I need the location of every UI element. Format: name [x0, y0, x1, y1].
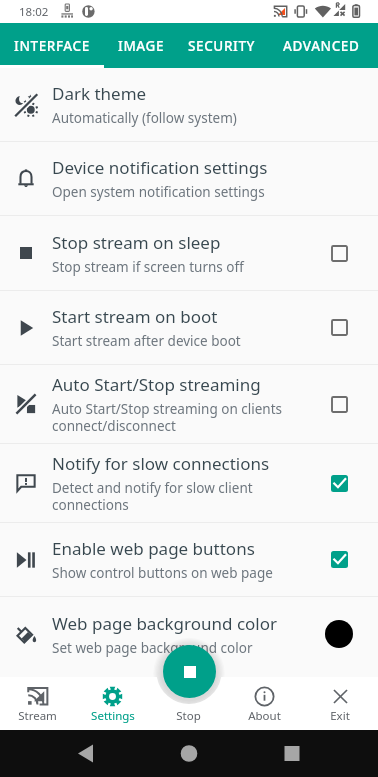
staticText: About: [248, 708, 281, 724]
button[interactable]: Settings: [75, 677, 150, 730]
staticText: Stop: [176, 708, 201, 724]
button[interactable]: IMAGE: [104, 23, 178, 68]
button[interactable]: Start stream on boot: [0, 291, 378, 364]
staticText: IMAGE: [118, 37, 165, 55]
staticText: 18:02: [19, 4, 49, 20]
button[interactable]: Toggle: [331, 245, 348, 262]
staticText: Auto Start/Stop streaming on clients con…: [52, 400, 282, 435]
staticText: Auto Start/Stop streaming: [52, 373, 261, 396]
button[interactable]: Dark theme: [0, 68, 378, 141]
button[interactable]: Device notification settings: [0, 142, 378, 215]
button[interactable]: Pick color: [325, 620, 353, 648]
staticText: Show control buttons on web page: [52, 564, 273, 582]
button[interactable]: ADVANCED: [265, 23, 378, 68]
button[interactable]: Notify for slow connections: [0, 444, 378, 522]
button[interactable]: Toggle: [331, 319, 348, 336]
button[interactable]: Toggle: [331, 396, 348, 413]
staticText: Dark theme: [52, 82, 147, 105]
staticText: Enable web page buttons: [52, 537, 255, 560]
staticText: Device notification settings: [52, 156, 268, 179]
staticText: SECURITY: [188, 37, 256, 55]
staticText: Stop stream on sleep: [52, 231, 221, 254]
button[interactable]: Stop: [150, 677, 226, 730]
button[interactable]: Web page background color: [0, 597, 378, 671]
staticText: ADVANCED: [283, 37, 360, 55]
button[interactable]: Toggle: [331, 551, 348, 568]
button[interactable]: Stream: [0, 677, 75, 730]
staticText: Automatically (follow system): [52, 109, 237, 127]
staticText: Start stream on boot: [52, 305, 218, 328]
staticText: Detect and notify for slow client connec…: [52, 479, 253, 514]
button[interactable]: About: [226, 677, 302, 730]
staticText: INTERFACE: [14, 37, 90, 55]
staticText: Open system notification settings: [52, 183, 265, 201]
button[interactable]: Exit: [302, 677, 378, 730]
staticText: Start stream after device boot: [52, 332, 241, 350]
button[interactable]: Auto Start/Stop streaming: [0, 365, 378, 443]
staticText: Settings: [91, 708, 135, 724]
staticText: Exit: [330, 708, 350, 724]
button[interactable]: SECURITY: [178, 23, 265, 68]
staticText: Notify for slow connections: [52, 452, 270, 475]
staticText: Stream: [18, 708, 57, 724]
button[interactable]: Toggle: [331, 475, 348, 492]
staticText: Stop stream if screen turns off: [52, 258, 244, 276]
button[interactable]: Stop stream on sleep: [0, 216, 378, 290]
staticText: Set web page background color: [52, 639, 253, 657]
button[interactable]: Stop stream: [163, 645, 216, 698]
button[interactable]: INTERFACE: [0, 23, 104, 68]
button[interactable]: Enable web page buttons: [0, 523, 378, 596]
staticText: Web page background color: [52, 612, 278, 635]
